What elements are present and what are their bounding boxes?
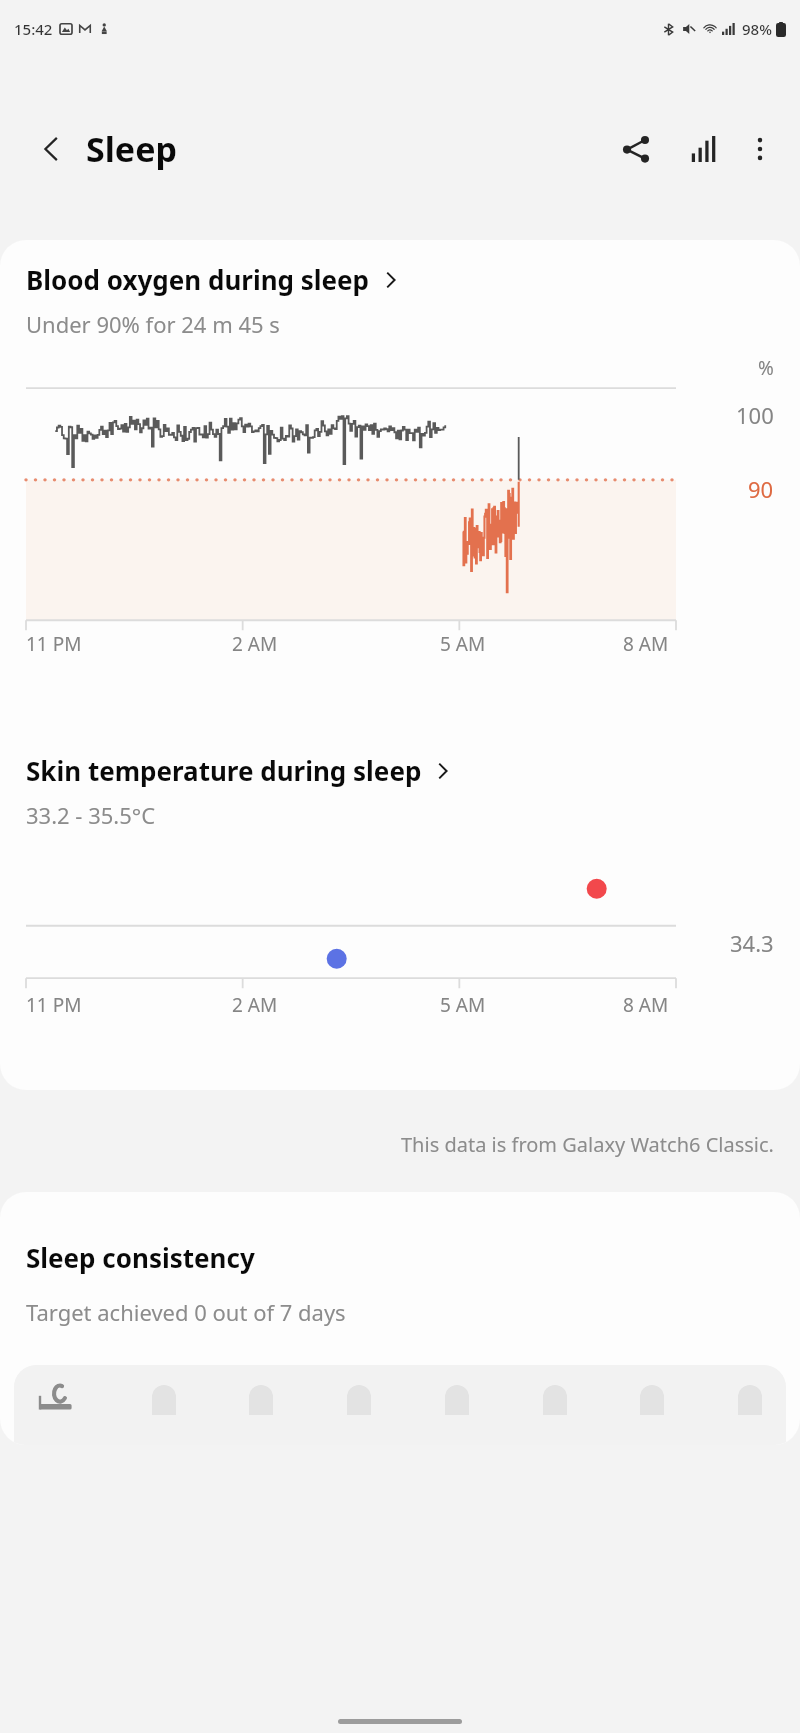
staticText: 15:42	[14, 19, 53, 39]
button[interactable]: More options	[736, 125, 784, 173]
staticText: Skin temperature during sleep	[26, 753, 422, 788]
button[interactable]: Back	[28, 126, 74, 172]
button[interactable]: Trends	[678, 123, 730, 175]
staticText: Sleep	[86, 126, 177, 172]
staticText: Blood oxygen during sleep	[26, 262, 370, 297]
staticText: 2 AM	[232, 992, 278, 1018]
button[interactable]: Share	[610, 123, 662, 175]
staticText: 100	[736, 400, 774, 430]
staticText: Under 90% for 24 m 45 s	[26, 309, 280, 339]
staticText: 8 AM	[623, 631, 669, 657]
button[interactable]: Skin temperature during sleep	[0, 753, 800, 788]
staticText: 11 PM	[26, 631, 82, 657]
staticText: 98%	[742, 19, 772, 39]
staticText: 8 AM	[623, 992, 669, 1018]
staticText: 2 AM	[232, 631, 278, 657]
button[interactable]: Blood oxygen during sleep	[0, 262, 800, 297]
staticText: Sleep consistency	[26, 1240, 255, 1275]
staticText: 90	[748, 474, 774, 504]
staticText: 5 AM	[440, 992, 486, 1018]
staticText: This data is from Galaxy Watch6 Classic.	[401, 1131, 774, 1158]
staticText: 33.2 - 35.5°C	[26, 800, 156, 830]
staticText: 11 PM	[26, 992, 82, 1018]
staticText: 34.3	[730, 928, 774, 958]
staticText: 5 AM	[440, 631, 486, 657]
staticText: %	[758, 355, 774, 381]
staticText: Target achieved 0 out of 7 days	[26, 1297, 346, 1327]
